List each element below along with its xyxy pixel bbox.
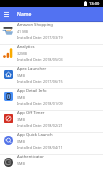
staticText: App Detail Info bbox=[17, 88, 47, 94]
staticText: 5MB bbox=[17, 73, 25, 78]
staticText: Name bbox=[17, 11, 32, 18]
staticText: 0MB bbox=[17, 139, 25, 144]
staticText: 32MB bbox=[17, 51, 27, 56]
staticText: 13:00 bbox=[89, 1, 100, 6]
staticText: 3MB bbox=[17, 117, 25, 122]
button[interactable]: Analytics bbox=[0, 44, 103, 66]
staticText: Authenticator bbox=[17, 154, 45, 160]
button[interactable]: Open navigation menu bbox=[0, 8, 13, 21]
staticText: Installed Date: 2017/03/19 bbox=[17, 35, 63, 40]
staticText: Installed Date: 2018/05/03 bbox=[17, 57, 63, 62]
staticText: Installed Date: 2018/02/21 bbox=[17, 123, 63, 128]
button[interactable]: App Quick Launch bbox=[0, 132, 103, 154]
staticText: Installed Date: 2018/04/11 bbox=[17, 145, 63, 150]
staticText: App Quick Launch bbox=[17, 132, 53, 138]
staticText: Apex Launcher bbox=[17, 66, 47, 72]
button[interactable]: Authenticator bbox=[0, 154, 103, 176]
staticText: 0MB bbox=[17, 95, 25, 100]
staticText: Analytics bbox=[17, 44, 35, 50]
button[interactable]: Amazon Shopping bbox=[0, 22, 103, 44]
staticText: Amazon Shopping bbox=[17, 22, 53, 28]
button[interactable]: App Off Timer bbox=[0, 110, 103, 132]
staticText: App Off Timer bbox=[17, 110, 45, 116]
staticText: 5MB bbox=[17, 161, 25, 166]
staticText: Installed Date: 2018/01/09 bbox=[17, 101, 63, 106]
staticText: Installed Date: 2017/06/15 bbox=[17, 79, 63, 84]
button[interactable]: App Detail Info bbox=[0, 88, 103, 110]
button[interactable]: Apex Launcher bbox=[0, 66, 103, 88]
staticText: 41 MB bbox=[17, 29, 28, 34]
